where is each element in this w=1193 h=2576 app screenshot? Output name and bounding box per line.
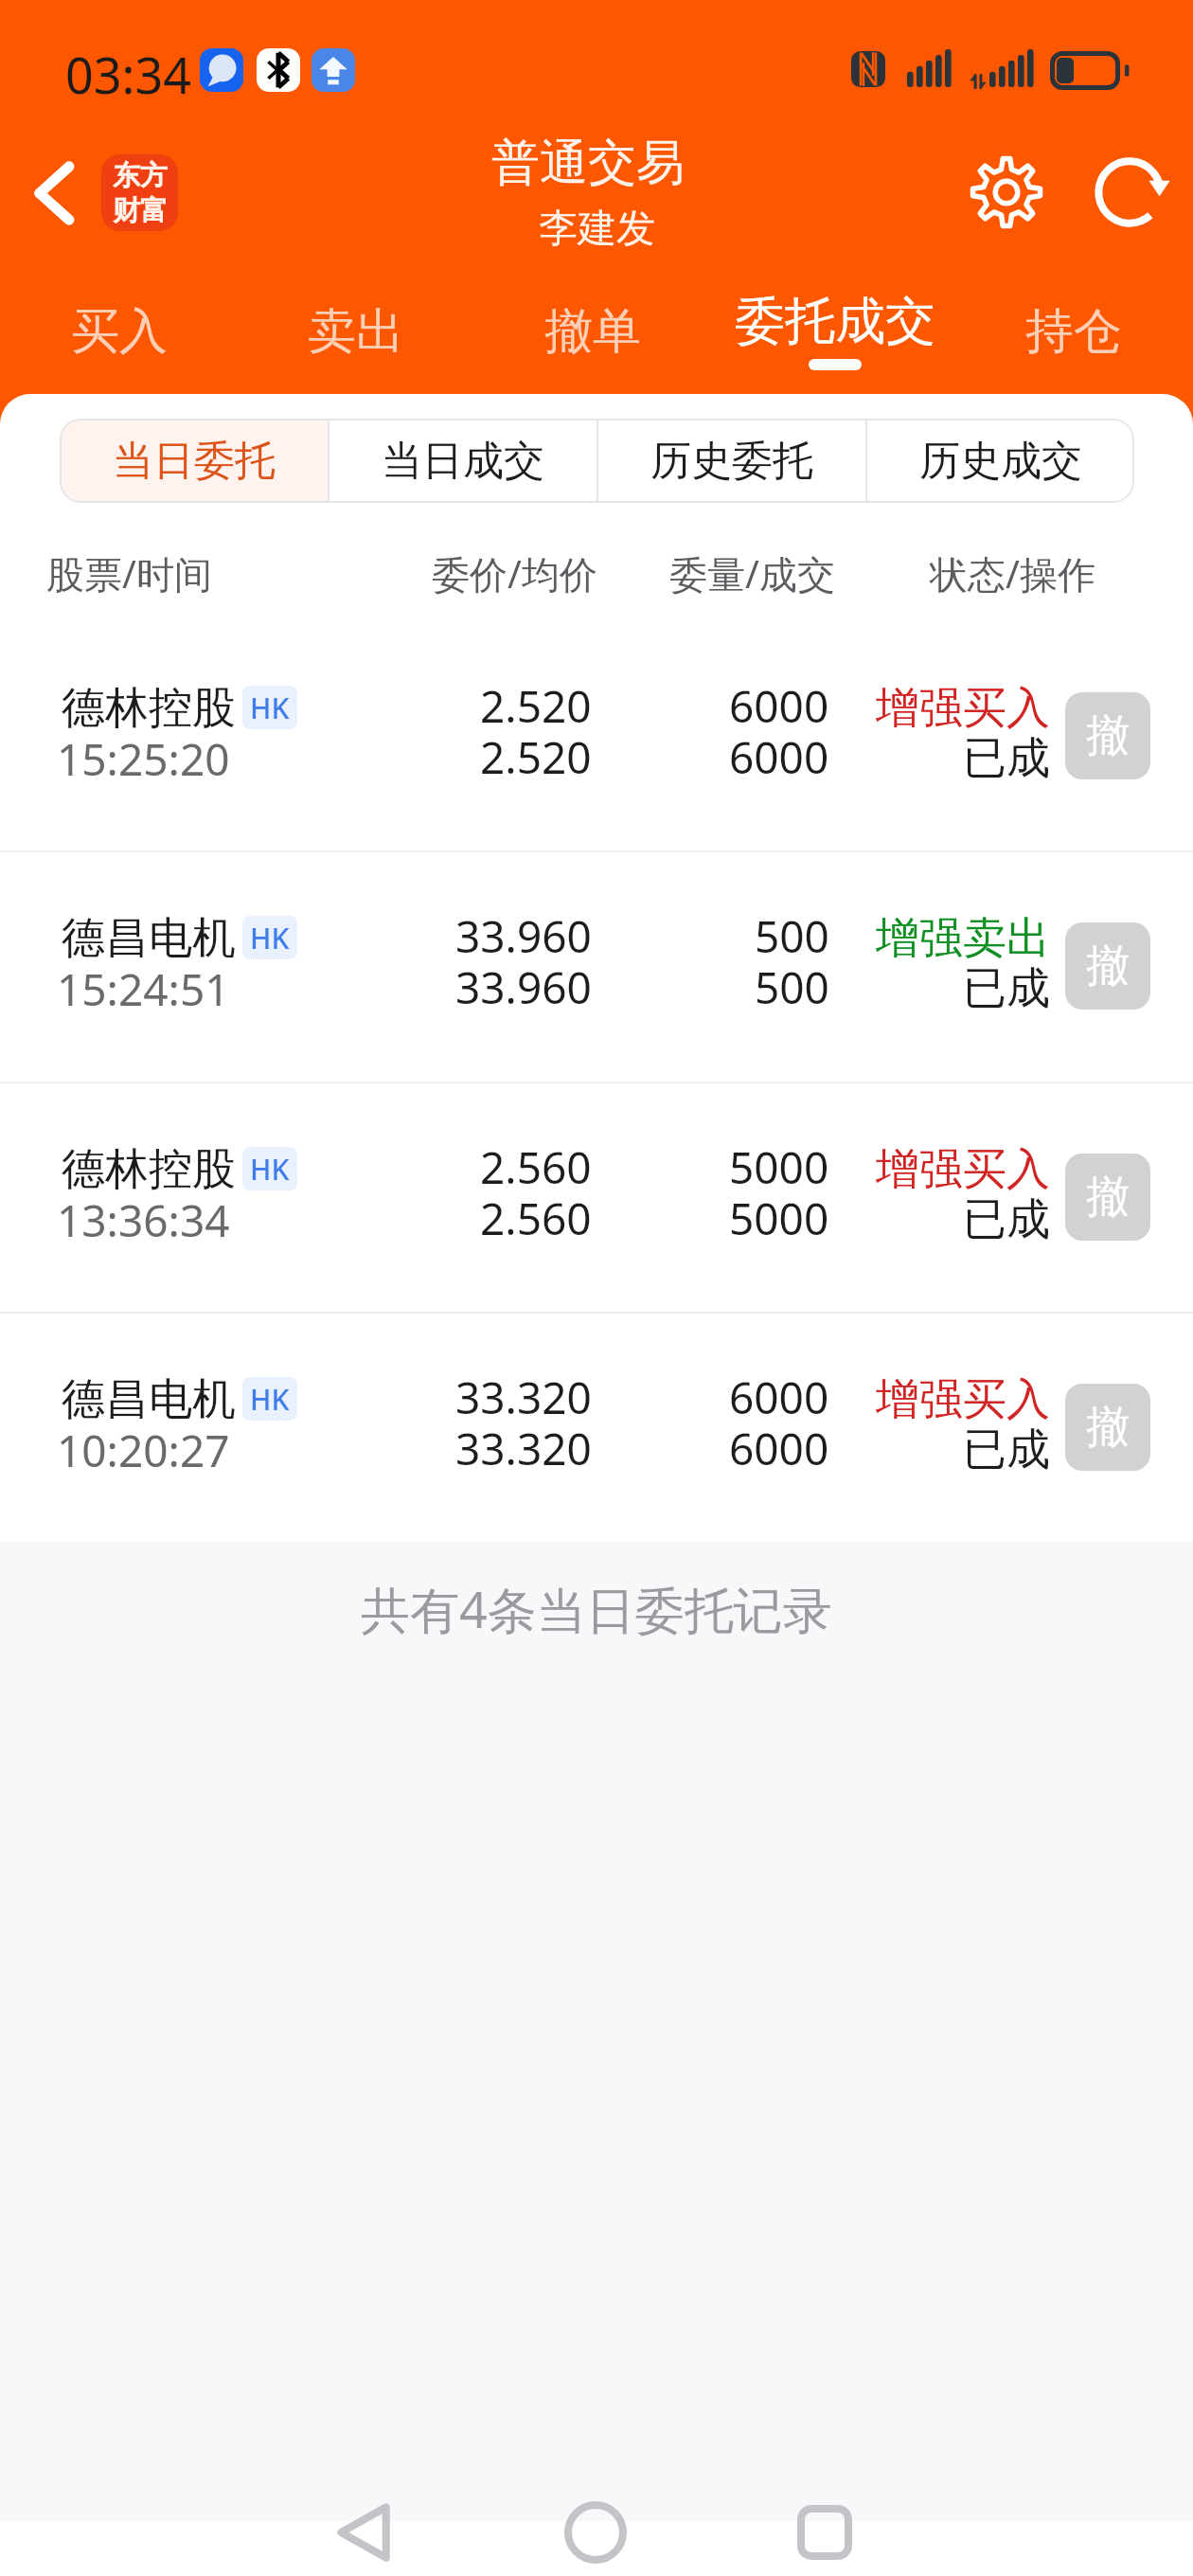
staticText: 历史成交: [919, 436, 1082, 487]
staticText: 03:34: [65, 41, 191, 108]
staticText: 已成: [963, 961, 1050, 1016]
button[interactable]: Home: [548, 2489, 643, 2576]
button[interactable]: East Money: [101, 154, 178, 231]
button[interactable]: 撤单: [525, 286, 660, 371]
staticText: 撤: [1086, 708, 1130, 763]
button[interactable]: 当日委托: [60, 419, 328, 503]
staticText: 2.560: [480, 1189, 592, 1248]
staticText: 撤: [1086, 939, 1130, 993]
staticText: 财富: [113, 193, 168, 228]
button[interactable]: 卖出: [289, 286, 423, 371]
button[interactable]: Back: [11, 148, 97, 239]
staticText: 5000: [729, 1137, 829, 1197]
button[interactable]: 撤: [1065, 692, 1150, 779]
staticText: 增强买入: [876, 681, 1050, 736]
staticText: 委托成交: [735, 290, 935, 353]
staticText: 增强买入: [876, 1372, 1050, 1427]
staticText: 撤: [1086, 1170, 1130, 1225]
staticText: 普通交易: [491, 133, 685, 193]
button[interactable]: 撤: [1065, 1154, 1150, 1241]
staticText: 股票/时间: [46, 547, 212, 599]
staticText: 6000: [729, 1419, 829, 1478]
staticText: 持仓: [1025, 301, 1122, 362]
staticText: 10:20:27: [57, 1421, 230, 1480]
staticText: 撤单: [544, 301, 641, 362]
staticText: 500: [755, 906, 829, 966]
button[interactable]: [0, 850, 1193, 1081]
staticText: 已成: [963, 1192, 1050, 1247]
button[interactable]: Recents: [777, 2489, 872, 2576]
staticText: 33.960: [455, 957, 592, 1017]
button[interactable]: 买入: [52, 286, 187, 371]
staticText: 33.960: [455, 906, 592, 966]
staticText: 德林控股: [62, 681, 236, 736]
staticText: 委量/成交: [669, 547, 835, 599]
staticText: HK: [250, 919, 290, 957]
button[interactable]: 持仓: [1006, 286, 1141, 371]
staticText: 买入: [71, 301, 168, 362]
button[interactable]: Refresh: [1086, 149, 1173, 236]
staticText: 委价/均价: [432, 547, 597, 599]
button[interactable]: [0, 1082, 1193, 1312]
staticText: 15:24:51: [57, 959, 230, 1019]
staticText: HK: [250, 1380, 290, 1419]
staticText: 15:25:20: [57, 729, 230, 789]
button[interactable]: [0, 1312, 1193, 1542]
staticText: 李建发: [539, 205, 655, 254]
staticText: 6000: [729, 1368, 829, 1427]
staticText: 已成: [963, 1422, 1050, 1477]
button[interactable]: 历史成交: [867, 419, 1134, 503]
staticText: 德昌电机: [62, 1372, 236, 1427]
staticText: 卖出: [308, 301, 404, 362]
staticText: 13:36:34: [57, 1190, 230, 1250]
staticText: HK: [250, 1150, 290, 1189]
staticText: 东方: [113, 158, 168, 193]
staticText: 2.520: [480, 727, 592, 787]
staticText: 5000: [729, 1189, 829, 1248]
staticText: 德昌电机: [62, 911, 236, 966]
button[interactable]: [0, 620, 1193, 850]
button[interactable]: 撤: [1065, 922, 1150, 1010]
staticText: 增强卖出: [876, 911, 1050, 966]
staticText: 当日成交: [382, 436, 544, 487]
staticText: 6000: [729, 727, 829, 787]
staticText: 状态/操作: [930, 547, 1095, 599]
staticText: 33.320: [455, 1419, 592, 1478]
staticText: 撤: [1086, 1400, 1130, 1455]
button[interactable]: 撤: [1065, 1384, 1150, 1471]
staticText: 共有4条当日委托记录: [361, 1575, 832, 1642]
staticText: 历史委托: [650, 436, 813, 487]
staticText: 2.520: [480, 676, 592, 736]
staticText: 当日委托: [113, 436, 276, 487]
staticText: 已成: [963, 731, 1050, 786]
button[interactable]: 委托成交: [716, 275, 954, 360]
staticText: 德林控股: [62, 1142, 236, 1197]
staticText: 2.560: [480, 1137, 592, 1197]
staticText: HK: [250, 689, 290, 727]
button[interactable]: Settings: [963, 149, 1050, 236]
staticText: 500: [755, 957, 829, 1017]
button[interactable]: 历史委托: [598, 419, 865, 503]
staticText: 6000: [729, 676, 829, 736]
staticText: 33.320: [455, 1368, 592, 1427]
staticText: 增强买入: [876, 1142, 1050, 1197]
button[interactable]: Back: [316, 2489, 411, 2576]
button[interactable]: 当日成交: [329, 419, 596, 503]
